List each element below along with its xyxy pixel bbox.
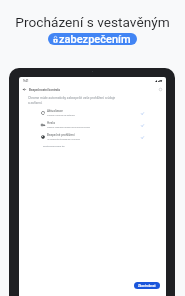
staticText: Je zapnutá standardní ochrana	[47, 138, 80, 141]
button[interactable]: Bezpečné prohlížení	[19, 131, 166, 143]
staticText: Nebyla nalezena žádná prolomená hesla	[47, 126, 90, 129]
button[interactable]: Zkontrolovat	[134, 282, 160, 289]
staticText: 9:41	[23, 79, 29, 82]
staticText: Bezpečné prohlížení	[47, 133, 75, 137]
staticText: zabezpečením	[59, 33, 131, 45]
staticText: Google Chrome je aktuální	[47, 114, 75, 117]
staticText: Chrome může automaticky zabezpečit vaše …	[28, 96, 116, 100]
staticText: Zkontrolovat	[138, 284, 156, 288]
button[interactable]: Aktualizace	[19, 107, 166, 119]
staticText: Zkontrolováno právě teď	[43, 145, 65, 147]
staticText: a zařízení.	[28, 101, 43, 105]
staticText: Procházení s vestavěným	[15, 14, 170, 30]
button[interactable]: Zpět	[21, 86, 28, 93]
staticText: Hesla	[47, 121, 55, 125]
button[interactable]: Nápověda	[157, 86, 164, 93]
staticText: Bezpečnostní kontrola	[29, 88, 60, 92]
staticText: Aktualizace	[47, 109, 63, 113]
button[interactable]: Hesla	[19, 119, 166, 131]
